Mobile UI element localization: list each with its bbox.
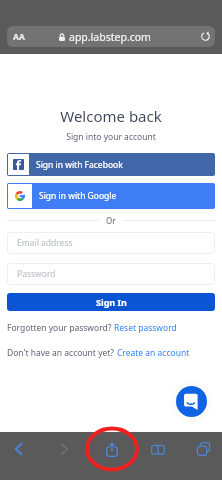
staticText: AA — [13, 31, 25, 43]
staticText: Sign in with Google — [39, 190, 117, 202]
button[interactable]: Open chat — [176, 386, 207, 417]
button[interactable]: Create an account — [117, 347, 190, 359]
staticText: Sign in with Facebook — [36, 159, 123, 171]
button[interactable]: Password — [7, 263, 215, 285]
button[interactable]: Reload — [195, 26, 215, 47]
button[interactable]: Sign In — [7, 293, 215, 311]
staticText: Email address — [17, 237, 73, 249]
staticText: Password — [17, 268, 56, 280]
button[interactable]: Share — [95, 432, 129, 466]
button[interactable]: Email address — [7, 232, 215, 254]
staticText: app.labstep.com — [69, 30, 151, 44]
staticText: Welcome back — [0, 106, 222, 126]
staticText: Sign In — [96, 296, 127, 308]
button[interactable]: Back — [1, 432, 35, 466]
button[interactable]: Reset password — [114, 322, 177, 334]
staticText: Don't have an account yet? — [7, 347, 117, 359]
staticText: Sign into your account — [0, 131, 222, 143]
staticText: Or — [106, 215, 116, 226]
button[interactable]: Sign in with Google — [7, 183, 215, 209]
button[interactable]: Tabs — [186, 432, 220, 466]
button[interactable]: Bookmarks — [141, 432, 175, 466]
staticText: Forgotten your password? — [7, 322, 114, 334]
button[interactable]: Text size — [8, 26, 29, 47]
button[interactable]: Sign in with Facebook — [7, 153, 215, 176]
button[interactable]: Text size — [7, 26, 215, 47]
